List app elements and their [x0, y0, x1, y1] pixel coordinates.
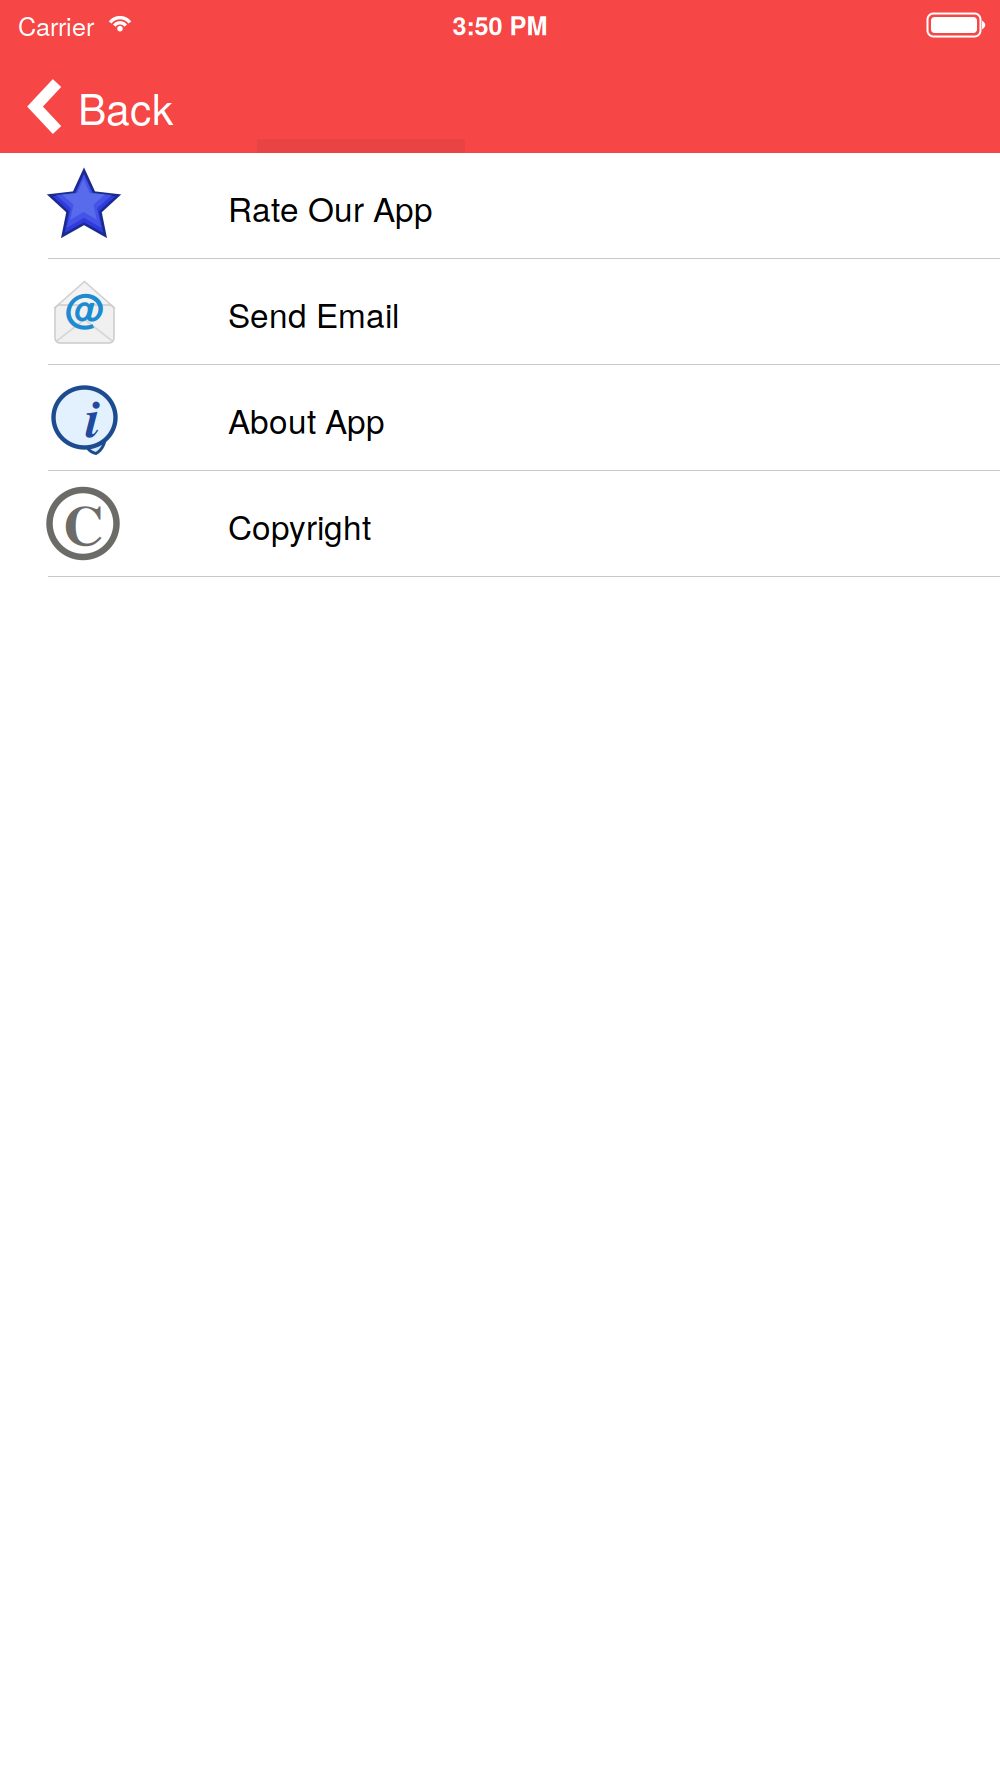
staticText: Rate Our App — [228, 184, 433, 231]
staticText: Back — [78, 76, 173, 137]
button[interactable]: @ — [0, 259, 1000, 364]
staticText: @ — [64, 279, 103, 336]
staticText: C — [63, 483, 103, 564]
staticText: Carrier — [18, 7, 94, 43]
staticText: Send Email — [228, 290, 399, 337]
button[interactable]: C — [0, 471, 1000, 576]
staticText: About App — [228, 396, 385, 443]
staticText: 3:50 PM — [452, 7, 547, 43]
staticText: i — [85, 379, 100, 454]
button[interactable]: Rate Our App — [0, 153, 1000, 258]
button[interactable]: i — [0, 365, 1000, 470]
button[interactable]: Back — [0, 76, 173, 137]
staticText: Copyright — [228, 502, 371, 549]
